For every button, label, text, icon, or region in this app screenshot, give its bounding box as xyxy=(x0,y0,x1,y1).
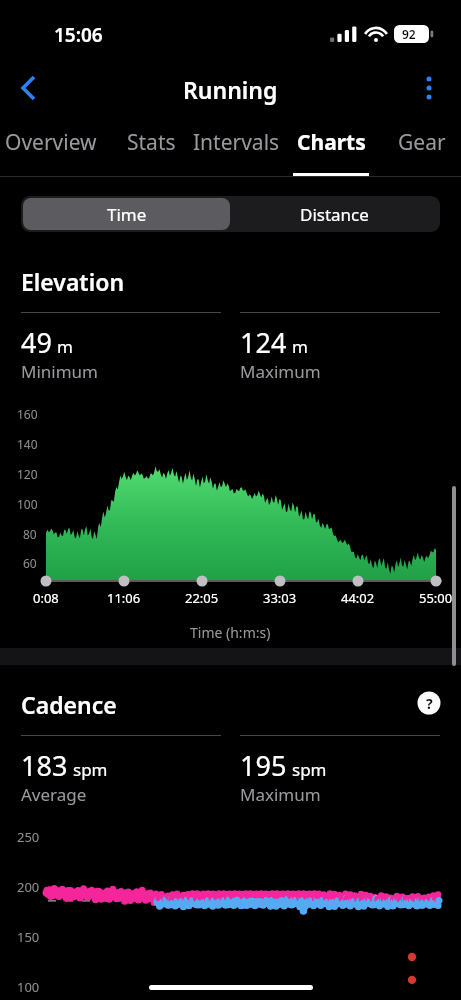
staticText: Charts xyxy=(297,128,366,157)
staticText: Minimum xyxy=(21,360,98,383)
staticText: Average xyxy=(21,783,87,806)
staticText: m xyxy=(57,335,73,358)
staticText: 120 xyxy=(17,466,38,482)
button[interactable]: Distance xyxy=(230,198,438,230)
staticText: 22:05 xyxy=(185,589,219,607)
staticText: 160 xyxy=(17,406,38,422)
staticText: ? xyxy=(426,694,433,713)
staticText: 49 xyxy=(21,324,52,361)
button[interactable]: Charts xyxy=(293,128,369,176)
staticText: 100 xyxy=(17,978,40,996)
staticText: 44:02 xyxy=(341,589,375,607)
staticText: Stats xyxy=(127,128,176,157)
staticText: spm xyxy=(292,758,327,781)
staticText: 140 xyxy=(17,436,38,452)
staticText: 150 xyxy=(17,928,40,946)
staticText: 200 xyxy=(17,878,40,896)
staticText: Intervals xyxy=(193,128,280,157)
button[interactable]: More options xyxy=(407,66,451,110)
staticText: 15:06 xyxy=(54,22,103,48)
staticText: Maximum xyxy=(240,360,321,383)
staticText: Gear xyxy=(398,128,446,157)
staticText: Running xyxy=(183,74,278,105)
button[interactable]: Help xyxy=(416,690,442,716)
staticText: Time (h:m:s) xyxy=(190,623,271,642)
staticText: Maximum xyxy=(240,783,321,806)
staticText: Distance xyxy=(300,203,369,226)
staticText: Time xyxy=(107,203,147,226)
staticText: 100 xyxy=(17,496,38,512)
button[interactable]: Time xyxy=(23,198,230,230)
button[interactable]: Overview xyxy=(0,128,106,176)
staticText: m xyxy=(292,335,308,358)
staticText: 33:03 xyxy=(263,589,297,607)
button[interactable]: Stats xyxy=(120,128,182,176)
staticText: Cadence xyxy=(21,689,117,720)
staticText: 80 xyxy=(23,526,37,542)
staticText: 55:00 xyxy=(419,589,453,607)
staticText: 124 xyxy=(240,324,287,361)
staticText: 11:06 xyxy=(107,589,141,607)
staticText: Overview xyxy=(5,128,97,157)
staticText: 0:08 xyxy=(33,589,59,607)
staticText: Elevation xyxy=(21,266,125,297)
button[interactable]: Intervals xyxy=(188,128,284,176)
button[interactable]: Gear xyxy=(387,128,457,176)
staticText: 60 xyxy=(23,555,37,571)
button[interactable]: Back xyxy=(6,66,50,110)
staticText: spm xyxy=(73,758,108,781)
staticText: 183 xyxy=(21,747,68,784)
staticText: 195 xyxy=(240,747,287,784)
staticText: 92 xyxy=(402,26,416,42)
staticText: 250 xyxy=(17,828,40,846)
